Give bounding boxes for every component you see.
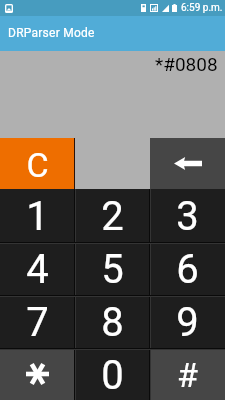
- button[interactable]: 3: [150, 189, 225, 242]
- staticText: 3: [176, 193, 199, 240]
- staticText: 0: [101, 352, 124, 399]
- staticText: 5: [101, 246, 124, 293]
- button[interactable]: 4: [0, 242, 75, 295]
- staticText: 7: [26, 299, 49, 346]
- button[interactable]: 8: [75, 295, 150, 348]
- staticText: 8: [101, 299, 124, 346]
- button[interactable]: 6: [150, 242, 225, 295]
- staticText: *#0808: [155, 53, 218, 75]
- button[interactable]: 0: [75, 348, 150, 400]
- button[interactable]: Star key: [0, 348, 75, 400]
- button[interactable]: 1: [0, 189, 75, 242]
- staticText: C: [26, 145, 49, 185]
- button[interactable]: Backspace: [150, 138, 225, 189]
- staticText: 2: [101, 193, 124, 240]
- staticText: 9: [176, 299, 199, 346]
- button[interactable]: 5: [75, 242, 150, 295]
- staticText: #: [177, 355, 198, 395]
- staticText: 4: [26, 246, 49, 293]
- button[interactable]: 7: [0, 295, 75, 348]
- staticText: 1: [26, 193, 49, 240]
- staticText: DRParser Mode: [8, 26, 95, 40]
- button[interactable]: 2: [75, 189, 150, 242]
- staticText: 6:59 p.m.: [181, 2, 223, 14]
- button[interactable]: C: [0, 138, 75, 189]
- button[interactable]: #: [150, 348, 225, 400]
- staticText: 6: [176, 246, 199, 293]
- button[interactable]: 9: [150, 295, 225, 348]
